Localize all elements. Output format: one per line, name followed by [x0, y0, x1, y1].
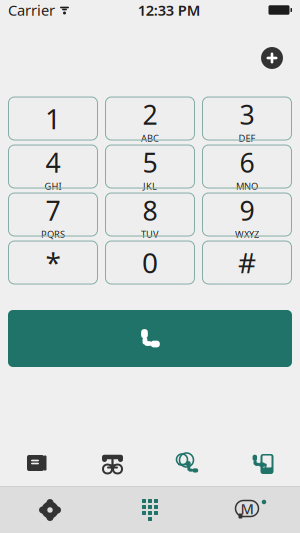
button[interactable]: Mobile call	[225, 443, 300, 483]
button[interactable]: Keypad	[100, 487, 200, 532]
button[interactable]: Voicemail	[75, 443, 150, 483]
button[interactable]: 9	[202, 193, 291, 236]
button[interactable]: 2	[105, 97, 194, 140]
staticText: ABC	[141, 132, 159, 144]
button[interactable]: Messages	[200, 487, 300, 532]
staticText: WXYZ	[235, 228, 259, 240]
staticText: 4	[45, 145, 60, 180]
staticText: 1	[45, 100, 61, 137]
button[interactable]: 8	[105, 193, 194, 236]
button[interactable]: Call	[8, 310, 292, 367]
button[interactable]: 5	[105, 145, 194, 188]
staticText: #	[238, 244, 256, 281]
button[interactable]: *	[8, 241, 97, 284]
staticText: PQRS	[41, 228, 65, 240]
staticText: Carrier	[8, 0, 55, 20]
staticText: 0	[142, 244, 158, 281]
staticText: GHI	[44, 180, 61, 192]
staticText: M	[240, 499, 253, 518]
staticText: *	[45, 244, 60, 281]
staticText: 9	[239, 193, 254, 228]
button[interactable]: 7	[8, 193, 97, 236]
button[interactable]: #	[202, 241, 291, 284]
staticText: 6	[239, 145, 254, 180]
button[interactable]: 1	[8, 97, 97, 140]
button[interactable]: 3	[202, 97, 291, 140]
staticText: 12:33 PM	[138, 0, 201, 20]
staticText: JKL	[143, 180, 157, 192]
staticText: 7	[45, 193, 60, 228]
staticText: 5	[142, 145, 157, 180]
staticText: DEF	[238, 132, 255, 144]
staticText: 3	[239, 97, 254, 132]
button[interactable]: Cloud calls	[150, 443, 225, 483]
button[interactable]: 6	[202, 145, 291, 188]
staticText: MNO	[236, 180, 258, 192]
staticText: 2	[142, 97, 157, 132]
button[interactable]: Settings	[0, 487, 100, 532]
staticText: TUV	[141, 228, 159, 240]
staticText: 8	[142, 193, 157, 228]
button[interactable]: Contacts	[0, 443, 75, 483]
button[interactable]: Close	[255, 41, 289, 75]
button[interactable]: 0	[105, 241, 194, 284]
button[interactable]: 4	[8, 145, 97, 188]
